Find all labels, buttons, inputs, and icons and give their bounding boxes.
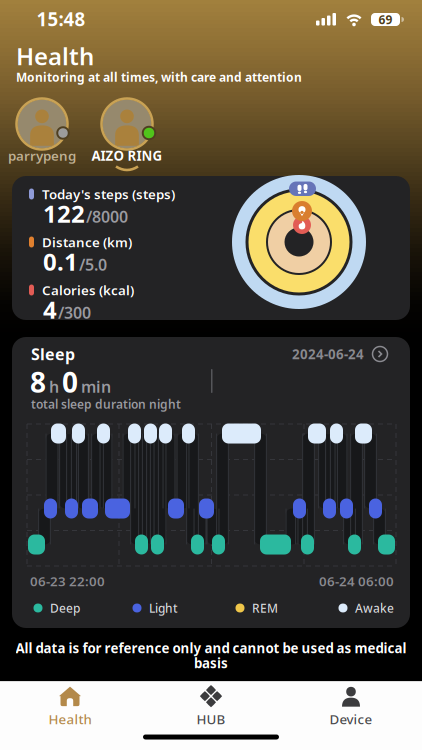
staticText: min — [81, 376, 111, 397]
staticText: basis — [194, 654, 228, 672]
staticText: /300 — [58, 302, 91, 323]
button[interactable]: Activity summary — [12, 176, 410, 320]
staticText: Health — [48, 710, 91, 728]
staticText: AIZO RING — [91, 147, 162, 164]
button[interactable]: HUB — [166, 684, 256, 730]
staticText: 2024-06-24 — [292, 345, 364, 363]
staticText: HUB — [196, 710, 225, 728]
staticText: /8000 — [86, 206, 128, 227]
staticText: 15:48 — [36, 7, 85, 31]
staticText: Monitoring at all times, with care and a… — [16, 69, 302, 85]
staticText: Deep — [50, 600, 80, 616]
staticText: 0 — [62, 363, 78, 401]
staticText: 122 — [43, 198, 85, 229]
staticText: parrypeng — [8, 147, 76, 164]
staticText: 8 — [30, 363, 46, 401]
button[interactable]: parrypeng — [2, 90, 82, 166]
staticText: 0.1 — [43, 246, 78, 277]
staticText: REM — [252, 600, 278, 616]
staticText: Health — [16, 40, 94, 72]
staticText: 69 — [378, 11, 392, 27]
button[interactable]: Device — [306, 684, 396, 730]
button[interactable]: Select date — [292, 342, 388, 366]
staticText: Calories (kcal) — [42, 281, 134, 299]
staticText: Today's steps (steps) — [42, 185, 175, 203]
staticText: total sleep duration night — [31, 396, 181, 412]
staticText: All data is for reference only and canno… — [15, 639, 406, 657]
staticText: /5.0 — [79, 254, 107, 275]
staticText: Light — [149, 600, 178, 616]
staticText: h — [49, 376, 59, 397]
staticText: Awake — [355, 600, 394, 616]
staticText: 06-23 22:00 — [30, 572, 105, 590]
staticText: Distance (km) — [42, 233, 132, 251]
staticText: 06-24 06:00 — [319, 572, 394, 590]
staticText: Device — [329, 710, 372, 728]
staticText: 4 — [43, 294, 57, 325]
button[interactable]: AIZO RING — [82, 90, 172, 166]
button[interactable]: Health — [25, 684, 115, 730]
staticText: Sleep — [31, 343, 75, 365]
